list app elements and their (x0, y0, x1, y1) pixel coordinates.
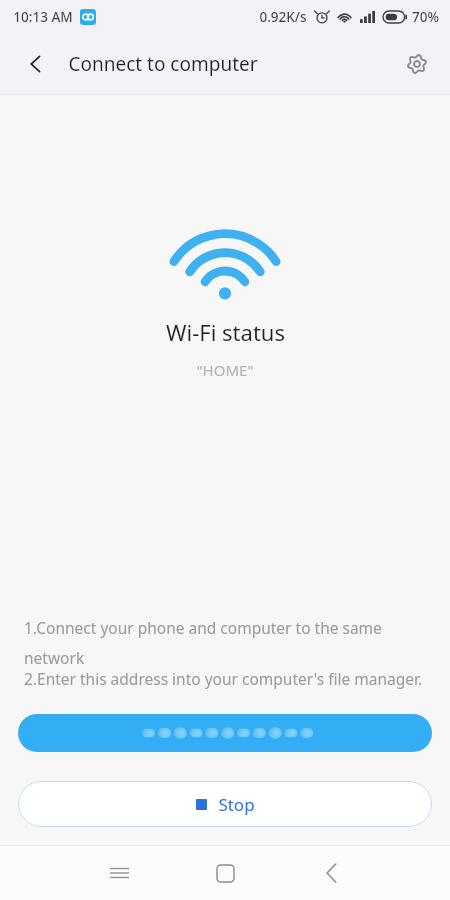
staticText: Wi-Fi status (166, 317, 285, 347)
button[interactable]: Back (308, 850, 354, 896)
staticText: 0.92K/s (259, 8, 307, 26)
staticText: 2.Enter this address into your computer'… (24, 668, 423, 689)
button[interactable]: Home (202, 850, 248, 896)
staticText: 70% (412, 8, 439, 26)
button[interactable]: Server address (18, 714, 432, 752)
button[interactable]: Recent apps (96, 850, 142, 896)
staticText: 1.Connect your phone and computer to the… (24, 617, 426, 668)
staticText: 10:13 AM (13, 8, 73, 26)
staticText: "HOME" (196, 360, 254, 380)
staticText: Connect to computer (68, 51, 258, 77)
button[interactable]: Back (12, 40, 60, 88)
button[interactable]: Stop (18, 781, 432, 827)
button[interactable]: Settings (394, 41, 440, 87)
staticText: Stop (218, 793, 255, 816)
